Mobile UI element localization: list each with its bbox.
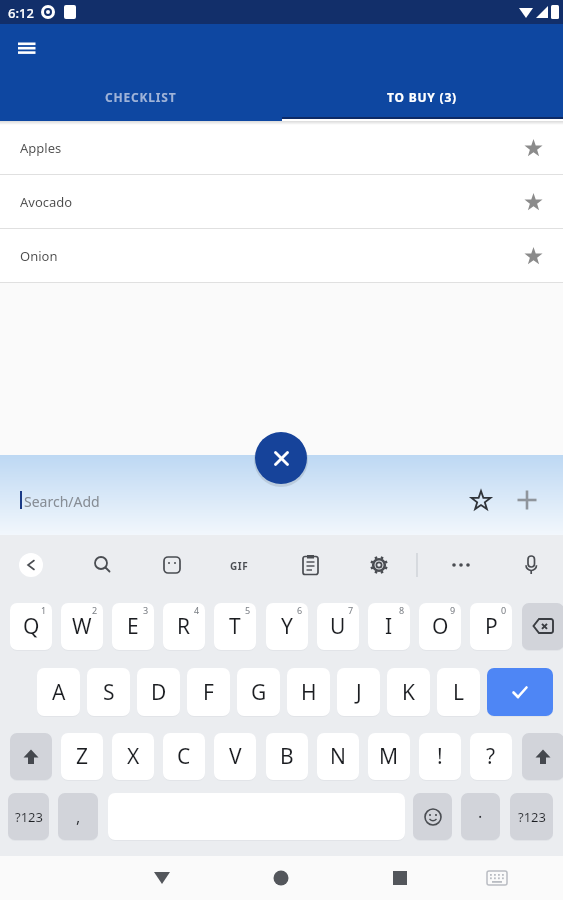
button[interactable] — [140, 856, 184, 900]
staticText: P — [485, 612, 498, 641]
button[interactable]: H — [287, 668, 330, 716]
button[interactable]: E — [112, 603, 154, 650]
staticText: 5 — [245, 604, 251, 616]
button[interactable]: ! — [419, 733, 461, 780]
staticText: 1 — [41, 604, 47, 616]
button[interactable]: I — [368, 603, 410, 650]
button[interactable] — [8, 33, 44, 69]
staticText: B — [280, 742, 294, 771]
button[interactable]: N — [317, 733, 359, 780]
staticText: ?123 — [15, 808, 43, 826]
staticText: I — [385, 612, 393, 641]
staticText: 6 — [297, 604, 303, 616]
button[interactable] — [471, 490, 491, 510]
staticText: M — [379, 742, 399, 771]
staticText: Apples — [20, 139, 62, 157]
button[interactable]: L — [437, 668, 480, 716]
staticText: TO BUY (3) — [387, 89, 457, 105]
button[interactable]: C — [163, 733, 205, 780]
button[interactable]: TO BUY (3) — [281, 77, 563, 117]
staticText: ?123 — [518, 808, 546, 826]
button[interactable] — [255, 432, 307, 484]
button[interactable]: W — [61, 603, 103, 650]
staticText: ? — [486, 742, 496, 771]
button[interactable]: Onion — [0, 229, 563, 282]
staticText: Search/Add — [24, 492, 100, 511]
staticText: U — [330, 612, 346, 641]
staticText: Q — [23, 612, 40, 641]
button[interactable]: X — [112, 733, 154, 780]
button[interactable]: R — [163, 603, 205, 650]
button[interactable] — [259, 856, 303, 900]
staticText: D — [151, 678, 167, 707]
staticText: A — [52, 678, 66, 707]
button[interactable]: , — [58, 793, 98, 840]
button[interactable]: · — [461, 793, 500, 840]
staticText: H — [301, 678, 317, 707]
button[interactable]: Avocado — [0, 175, 563, 228]
staticText: V — [229, 742, 242, 771]
staticText: 8 — [399, 604, 405, 616]
button[interactable]: M — [368, 733, 410, 780]
button[interactable]: O — [419, 603, 461, 650]
button[interactable]: Y — [266, 603, 308, 650]
button[interactable]: V — [214, 733, 256, 780]
button[interactable]: J — [337, 668, 380, 716]
button[interactable]: Q — [10, 603, 52, 650]
staticText: ! — [437, 742, 443, 771]
staticText: , — [76, 806, 81, 828]
staticText: L — [453, 678, 465, 707]
staticText: C — [177, 742, 191, 771]
button[interactable] — [522, 603, 563, 650]
button[interactable] — [524, 138, 543, 157]
button[interactable]: A — [37, 668, 80, 716]
staticText: S — [103, 678, 115, 707]
staticText: N — [330, 742, 346, 771]
staticText: R — [177, 612, 191, 641]
button[interactable] — [10, 733, 52, 780]
button[interactable]: CHECKLIST — [0, 77, 281, 117]
button[interactable] — [524, 246, 543, 265]
button[interactable]: Apples — [0, 121, 563, 174]
button[interactable]: ?123 — [510, 793, 553, 840]
button[interactable]: T — [214, 603, 256, 650]
button[interactable] — [378, 856, 422, 900]
button[interactable]: F — [187, 668, 230, 716]
button[interactable] — [413, 793, 452, 840]
staticText: G — [251, 678, 267, 707]
staticText: 2 — [92, 604, 98, 616]
button[interactable]: ?123 — [8, 793, 49, 840]
button[interactable]: G — [237, 668, 280, 716]
button[interactable]: B — [266, 733, 308, 780]
staticText: 6:12 — [8, 4, 34, 22]
staticText: J — [356, 678, 362, 707]
button[interactable] — [524, 192, 543, 211]
staticText: 3 — [143, 604, 149, 616]
button[interactable]: U — [317, 603, 359, 650]
button[interactable] — [475, 856, 519, 900]
button[interactable]: ? — [470, 733, 512, 780]
staticText: GIF — [230, 559, 249, 573]
button[interactable] — [522, 733, 563, 780]
button[interactable] — [516, 489, 538, 511]
staticText: X — [127, 742, 140, 771]
button[interactable]: D — [137, 668, 180, 716]
button[interactable] — [487, 668, 553, 716]
button[interactable]: S — [87, 668, 130, 716]
staticText: 9 — [450, 604, 456, 616]
button[interactable]: Z — [61, 733, 103, 780]
staticText: T — [229, 612, 241, 641]
staticText: Y — [281, 612, 293, 641]
staticText: W — [72, 612, 92, 641]
staticText: Avocado — [20, 193, 73, 211]
staticText: · — [478, 806, 483, 828]
staticText: K — [402, 678, 415, 707]
staticText: 0 — [501, 604, 507, 616]
button[interactable]: K — [387, 668, 430, 716]
button[interactable]: P — [470, 603, 512, 650]
staticText: 4 — [194, 604, 200, 616]
staticText: Onion — [20, 247, 58, 265]
staticText: Z — [76, 742, 89, 771]
staticText: O — [432, 612, 449, 641]
